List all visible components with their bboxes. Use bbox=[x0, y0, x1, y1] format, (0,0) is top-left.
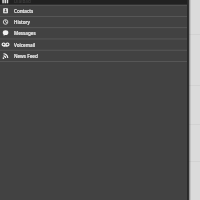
staticText: History bbox=[14, 19, 30, 25]
staticText: News Feed bbox=[14, 53, 38, 59]
button[interactable]: News Feed bbox=[0, 50, 187, 61]
staticText: Dialpad bbox=[14, 0, 31, 3]
staticText: Voicemail bbox=[14, 42, 36, 48]
button[interactable]: Voicemail bbox=[0, 39, 187, 50]
button[interactable]: Messages bbox=[0, 27, 187, 38]
button[interactable]: Contacts bbox=[0, 5, 187, 16]
button[interactable]: Dialpad bbox=[0, 0, 187, 5]
staticText: Messages bbox=[14, 30, 36, 36]
button[interactable]: History bbox=[0, 16, 187, 27]
staticText: Contacts bbox=[14, 8, 34, 14]
